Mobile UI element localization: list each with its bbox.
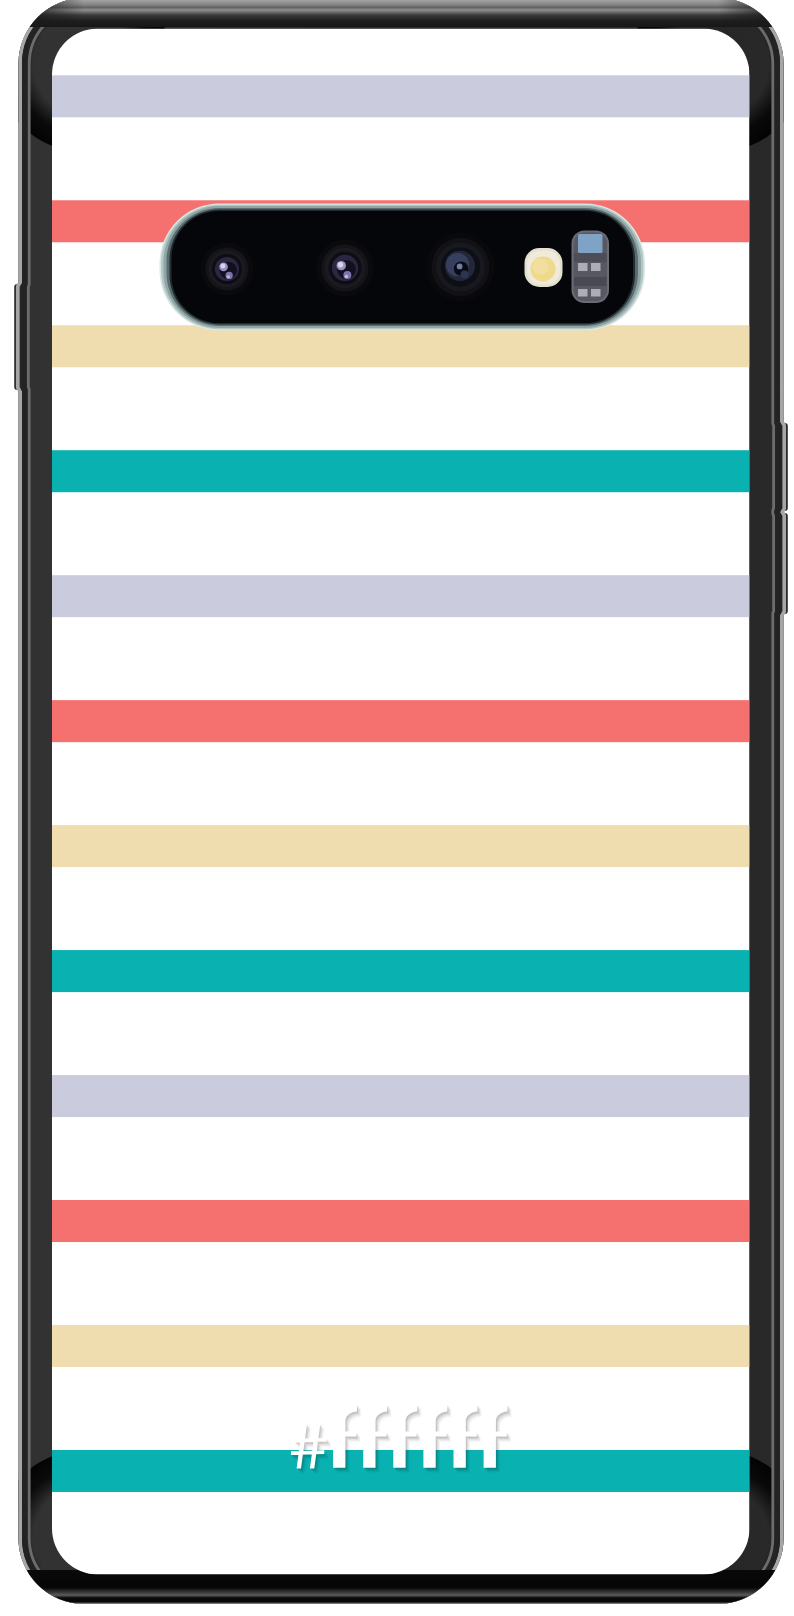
button[interactable]: Samsung Galaxy S10 phone case, white str… xyxy=(0,0,794,1616)
